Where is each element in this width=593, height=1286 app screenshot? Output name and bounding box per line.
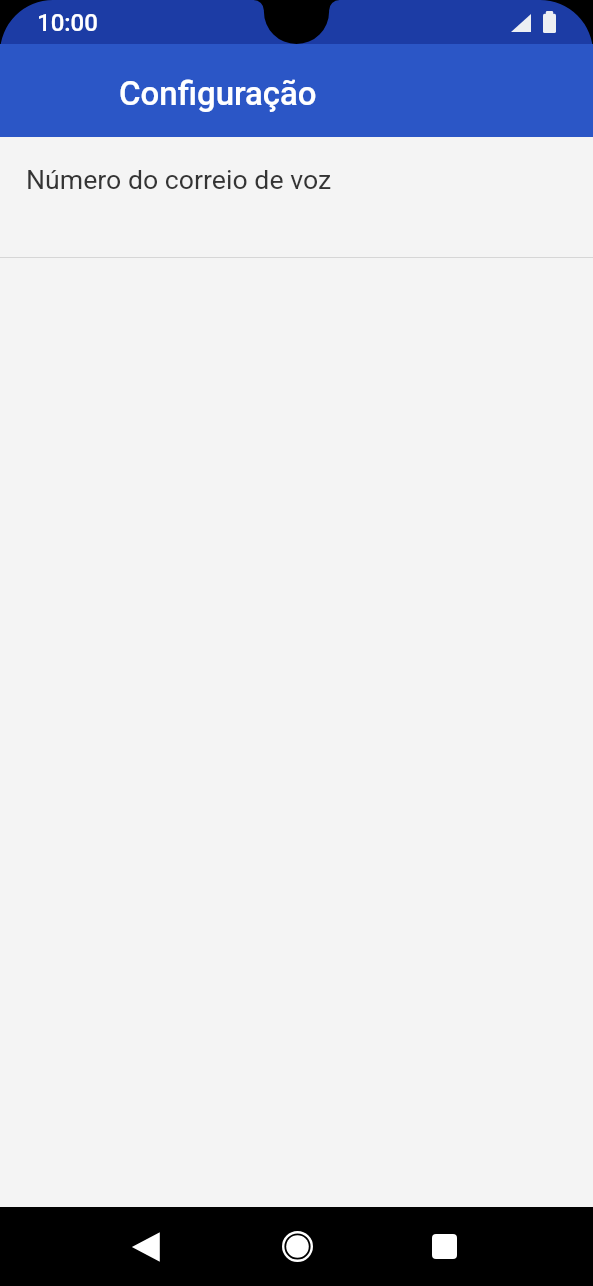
button[interactable]: Back bbox=[104, 1207, 188, 1286]
staticText: Configuração bbox=[119, 74, 317, 113]
button[interactable]: Recent apps bbox=[402, 1207, 486, 1286]
button[interactable]: Home bbox=[255, 1207, 339, 1286]
button[interactable]: Número do correio de voz bbox=[0, 137, 593, 257]
staticText: Número do correio de voz bbox=[26, 164, 332, 195]
staticText: 10:00 bbox=[37, 9, 98, 37]
